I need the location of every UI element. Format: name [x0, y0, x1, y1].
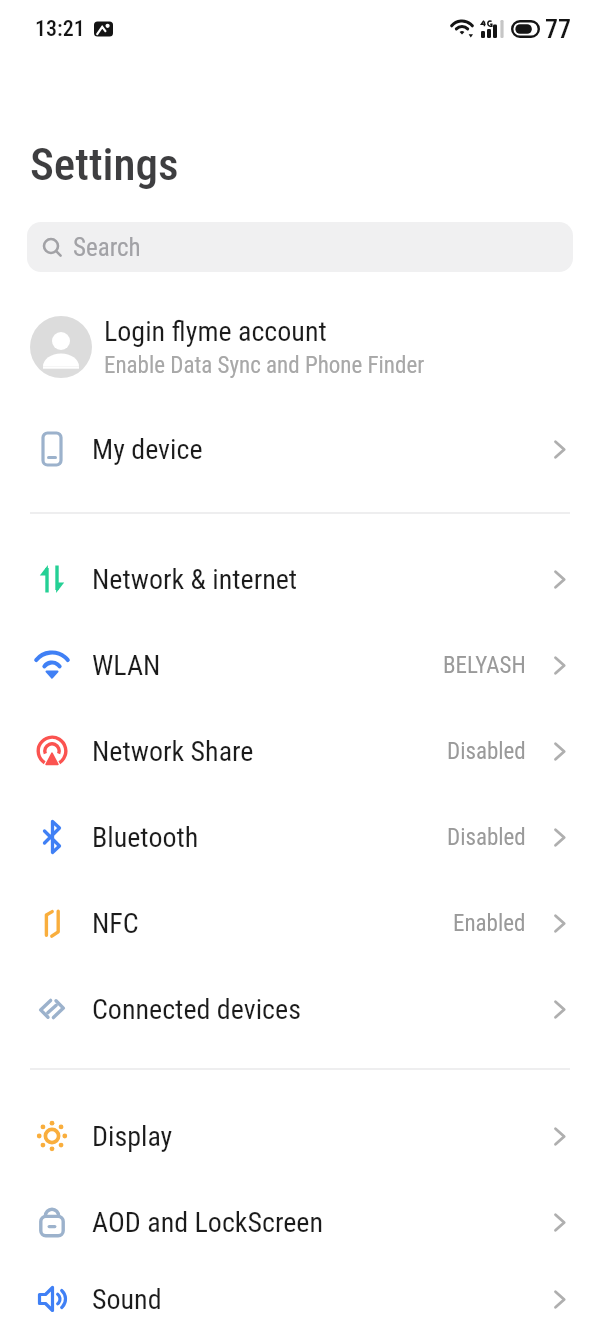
button[interactable]: Network Share — [0, 708, 600, 794]
staticText: Enabled — [453, 910, 526, 937]
staticText: Network & internet — [92, 563, 298, 596]
staticText: Connected devices — [92, 993, 301, 1026]
button[interactable]: My device — [0, 406, 600, 492]
button[interactable]: NFC — [0, 880, 600, 966]
staticText: NFC — [92, 907, 139, 940]
staticText: Bluetooth — [92, 821, 199, 854]
button[interactable]: AOD and LockScreen — [0, 1179, 600, 1265]
staticText: Enable Data Sync and Phone Finder — [104, 352, 425, 379]
staticText: AOD and LockScreen — [92, 1206, 323, 1239]
button[interactable]: Connected devices — [0, 966, 600, 1052]
button[interactable]: WLAN — [0, 622, 600, 708]
staticText: Disabled — [447, 738, 526, 765]
staticText: Login flyme account — [104, 315, 327, 348]
staticText: 77 — [545, 14, 572, 44]
button[interactable]: Display — [0, 1093, 600, 1179]
staticText: Search — [73, 233, 141, 262]
button[interactable]: Bluetooth — [0, 794, 600, 880]
staticText: Sound — [92, 1283, 162, 1316]
staticText: Settings — [30, 138, 179, 191]
staticText: BELYASH — [443, 652, 526, 679]
staticText: My device — [92, 433, 203, 466]
staticText: Disabled — [447, 824, 526, 851]
button[interactable]: Login flyme account — [0, 297, 600, 397]
staticText: Display — [92, 1120, 173, 1153]
staticText: 13:21 — [35, 16, 85, 42]
button[interactable]: Sound — [0, 1265, 600, 1333]
staticText: Network Share — [92, 735, 254, 768]
button[interactable]: Network & internet — [0, 536, 600, 622]
button[interactable]: Search — [27, 222, 573, 272]
staticText: WLAN — [92, 649, 161, 682]
